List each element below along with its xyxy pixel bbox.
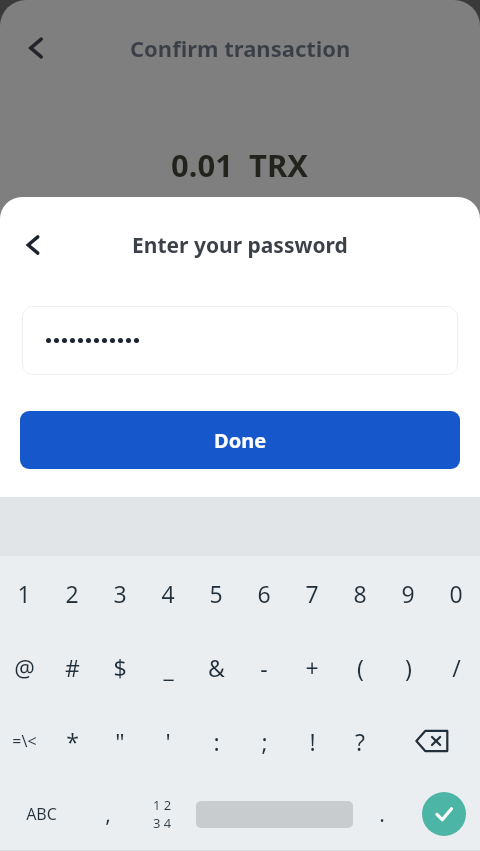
staticText: @	[14, 652, 35, 683]
button[interactable]: $	[96, 630, 144, 704]
staticText: $	[113, 652, 127, 683]
staticText: ABC	[26, 803, 57, 825]
button[interactable]: #	[48, 630, 96, 704]
staticText: =\<	[12, 730, 37, 752]
staticText: 0.01 TRX	[171, 144, 309, 186]
button[interactable]: 7	[288, 556, 336, 630]
button[interactable]: 5	[192, 556, 240, 630]
button[interactable]: 0	[432, 556, 480, 630]
staticText: 9	[401, 578, 415, 609]
staticText: ?	[355, 726, 365, 757]
button[interactable]: '	[144, 704, 192, 778]
button[interactable]: Back	[14, 26, 58, 70]
staticText: )	[405, 652, 412, 683]
staticText: !	[309, 726, 316, 757]
button[interactable]: 8	[336, 556, 384, 630]
button[interactable]: *	[48, 704, 96, 778]
staticText: 1	[17, 578, 31, 609]
button[interactable]: :	[192, 704, 240, 778]
staticText: /	[452, 652, 461, 683]
staticText: ;	[261, 726, 268, 757]
button[interactable]: !	[288, 704, 336, 778]
staticText: 4	[161, 578, 175, 609]
button[interactable]: (	[336, 630, 384, 704]
button[interactable]: )	[384, 630, 432, 704]
staticText: &	[208, 652, 225, 683]
staticText: -	[260, 652, 268, 683]
button[interactable]: Done	[20, 411, 460, 469]
button[interactable]: Space	[192, 778, 357, 850]
button[interactable]: -	[240, 630, 288, 704]
staticText: 3	[113, 578, 127, 609]
staticText: _	[163, 652, 174, 683]
staticText: *	[66, 726, 79, 757]
staticText: (	[357, 652, 364, 683]
button[interactable]: /	[432, 630, 480, 704]
staticText: :	[213, 726, 220, 757]
staticText: 8	[353, 578, 367, 609]
staticText: Enter your password	[132, 231, 348, 260]
button[interactable]: 6	[240, 556, 288, 630]
staticText: Done	[214, 427, 267, 454]
staticText: +	[305, 652, 319, 683]
button[interactable]: +	[288, 630, 336, 704]
button[interactable]: 3	[96, 556, 144, 630]
staticText: 0	[449, 578, 463, 609]
button[interactable]: @	[0, 630, 48, 704]
staticText: '	[165, 726, 171, 757]
button[interactable]: Backspace	[384, 704, 480, 778]
staticText: "	[115, 726, 125, 757]
staticText: 6	[257, 578, 271, 609]
staticText: 2	[65, 578, 79, 609]
staticText: Confirm transaction	[130, 33, 351, 63]
button[interactable]: 9	[384, 556, 432, 630]
staticText: 5	[209, 578, 223, 609]
button[interactable]: 2	[48, 556, 96, 630]
button[interactable]: ?	[336, 704, 384, 778]
staticText: 7	[305, 578, 319, 609]
button[interactable]: _	[144, 630, 192, 704]
button[interactable]: ;	[240, 704, 288, 778]
staticText: 3 4	[153, 814, 172, 832]
button[interactable]: ,	[83, 778, 133, 850]
staticText: .	[379, 800, 385, 829]
button[interactable]: 1	[0, 556, 48, 630]
staticText: 1 2	[153, 796, 172, 814]
button[interactable]: .	[357, 778, 407, 850]
button[interactable]: Back	[12, 224, 54, 266]
button[interactable]: Numbers	[133, 778, 192, 850]
button[interactable]: Enter	[407, 778, 480, 850]
staticText: #	[65, 652, 80, 683]
button[interactable]: =\<	[0, 704, 48, 778]
staticText: ,	[105, 800, 111, 829]
button[interactable]: "	[96, 704, 144, 778]
button[interactable]	[22, 306, 458, 375]
button[interactable]: &	[192, 630, 240, 704]
button[interactable]: ABC	[0, 778, 83, 850]
button[interactable]: 4	[144, 556, 192, 630]
